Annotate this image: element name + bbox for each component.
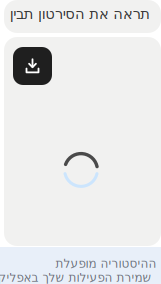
staticText: שמירת הפעילות שלך באפליקציה <box>0 271 151 284</box>
button[interactable]: Download <box>13 47 52 85</box>
staticText: ההיסטוריה מופעלת <box>55 257 156 270</box>
staticText: תראה את הסירטון תבין <box>9 6 150 22</box>
